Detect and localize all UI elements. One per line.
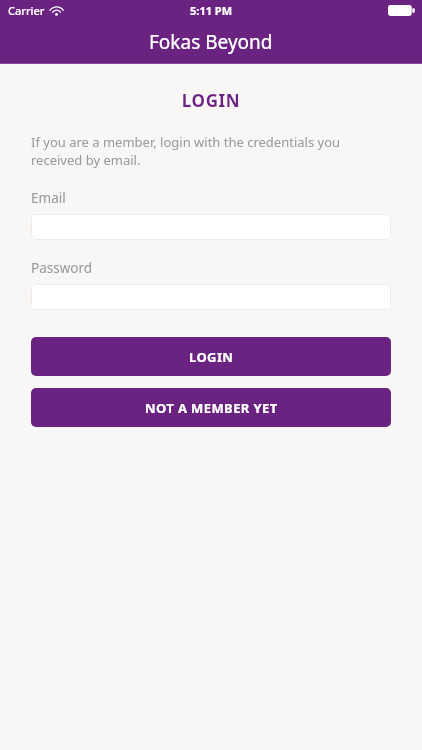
staticText: Fokas Beyond [149, 29, 273, 55]
button[interactable]: LOGIN [31, 337, 391, 376]
button[interactable]: NOT A MEMBER YET [31, 388, 391, 427]
staticText: If you are a member, login with the cred… [31, 133, 384, 169]
staticText: Email [31, 189, 422, 207]
staticText: LOGIN [189, 348, 234, 366]
staticText: LOGIN [0, 89, 422, 112]
staticText: Password [31, 259, 422, 277]
staticText: 5:11 PM [190, 3, 233, 18]
staticText: Carrier [8, 3, 45, 18]
staticText: NOT A MEMBER YET [145, 399, 278, 417]
button[interactable] [31, 284, 391, 310]
button[interactable] [31, 214, 391, 240]
